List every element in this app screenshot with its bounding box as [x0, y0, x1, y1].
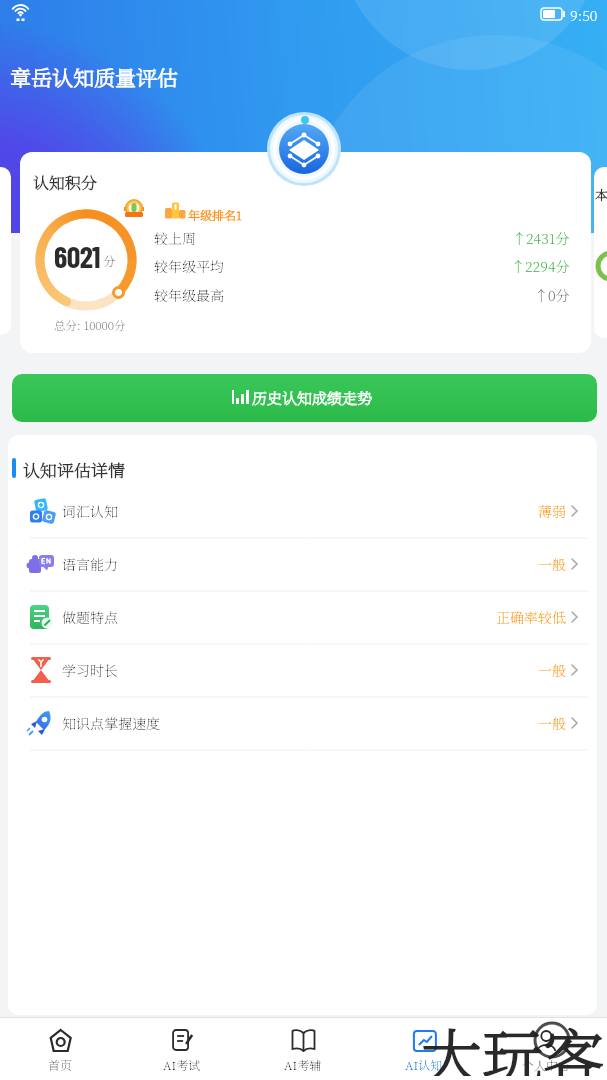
staticText: ↑2431分 — [512, 228, 570, 246]
button[interactable] — [491, 1018, 601, 1080]
button[interactable] — [127, 1018, 237, 1080]
button[interactable] — [10, 591, 595, 643]
staticText: 正确率较低 — [496, 607, 566, 627]
staticText: 6021 — [54, 238, 101, 270]
staticText: AI认知 — [405, 1056, 443, 1072]
staticText: 个人中心 — [522, 1056, 571, 1072]
button[interactable] — [10, 538, 595, 590]
staticText: 9:50 — [570, 5, 598, 25]
staticText: 较年级最高 — [154, 285, 224, 303]
button[interactable] — [10, 697, 595, 749]
button[interactable] — [12, 374, 597, 422]
staticText: ↑2294分 — [511, 256, 570, 274]
staticText: 章岳认知质量评估 — [10, 62, 178, 88]
staticText: 语言能力 — [62, 554, 118, 574]
staticText: 学习时长 — [62, 660, 118, 680]
staticText: 知识点掌握速度 — [62, 713, 160, 733]
staticText: 年级排名1 — [188, 206, 242, 222]
staticText: 一般 — [538, 713, 566, 733]
button[interactable] — [10, 485, 595, 537]
staticText: 分 — [103, 252, 116, 270]
staticText: 总分: 10000分 — [54, 317, 126, 333]
staticText: 较年级平均 — [154, 256, 224, 274]
staticText: 历史认知成绩走势 — [252, 387, 373, 409]
staticText: 本 — [595, 185, 607, 203]
staticText: 首页 — [48, 1056, 73, 1072]
staticText: 薄弱 — [538, 501, 566, 521]
staticText: 一般 — [538, 554, 566, 574]
button[interactable] — [248, 1018, 358, 1080]
button[interactable] — [5, 1018, 115, 1080]
staticText: AI考辅 — [284, 1056, 322, 1072]
staticText: 词汇认知 — [62, 501, 118, 521]
staticText: ↑0分 — [534, 285, 570, 303]
button[interactable] — [369, 1018, 479, 1080]
button[interactable] — [10, 644, 595, 696]
staticText: AI考试 — [163, 1056, 201, 1072]
staticText: 做题特点 — [62, 607, 118, 627]
staticText: 认知积分 — [33, 171, 98, 193]
staticText: 较上周 — [154, 228, 196, 246]
staticText: 认知评估详情 — [23, 457, 125, 479]
staticText: 大玩客 — [421, 1010, 605, 1076]
staticText: 一般 — [538, 660, 566, 680]
